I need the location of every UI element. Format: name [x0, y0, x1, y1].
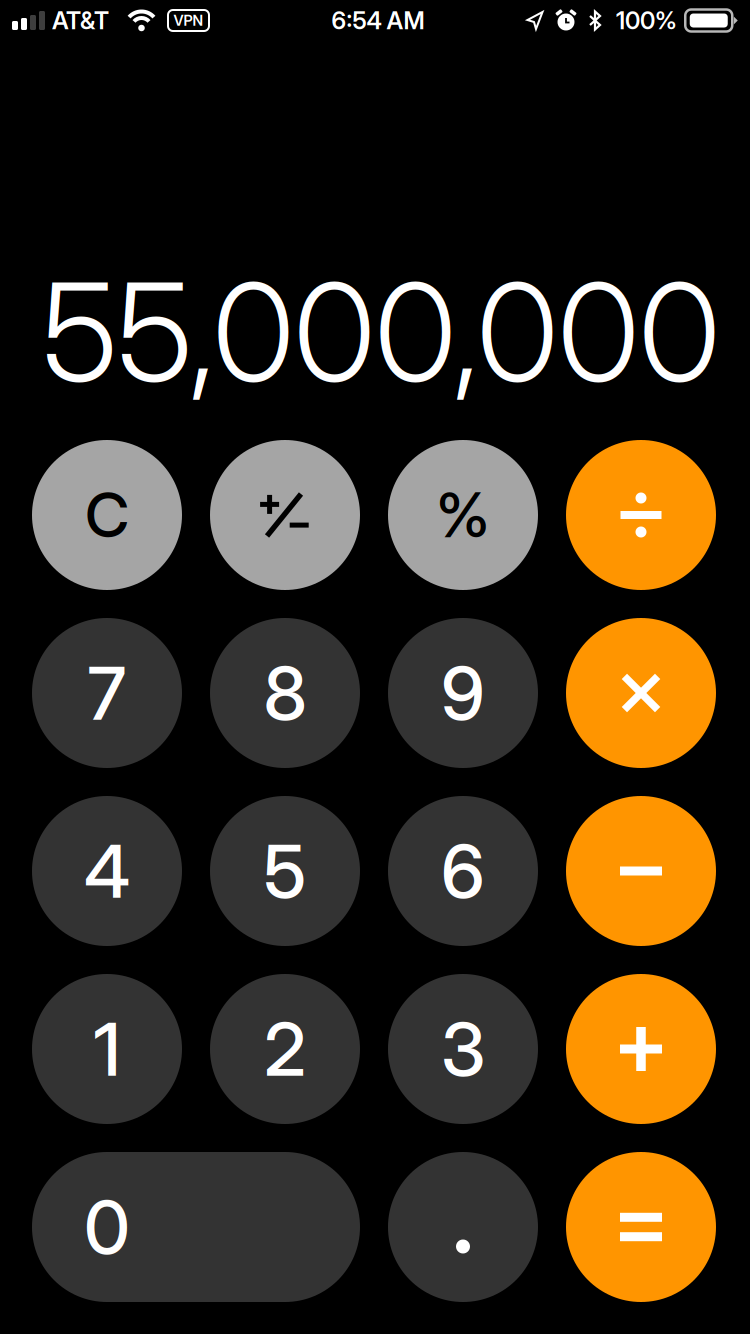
- staticText: 3: [441, 1005, 485, 1093]
- staticText: 55,000,000: [42, 250, 720, 414]
- staticText: 4: [84, 827, 130, 915]
- staticText: VPN: [173, 12, 203, 29]
- button[interactable]: [210, 618, 360, 768]
- button[interactable]: [32, 796, 182, 946]
- staticText: 6: [441, 827, 485, 915]
- staticText: AT&T: [52, 6, 109, 35]
- staticText: 0: [84, 1183, 130, 1271]
- staticText: 2: [264, 1005, 306, 1093]
- button[interactable]: [566, 1152, 716, 1302]
- button[interactable]: [566, 796, 716, 946]
- staticText: C: [85, 478, 129, 552]
- button[interactable]: [32, 1152, 360, 1302]
- staticText: 1: [93, 1005, 120, 1093]
- staticText: 100%: [616, 6, 677, 35]
- staticText: 8: [263, 649, 306, 737]
- button[interactable]: [566, 974, 716, 1124]
- button[interactable]: [566, 440, 716, 590]
- button[interactable]: [32, 618, 182, 768]
- staticText: 7: [87, 649, 126, 737]
- button[interactable]: [388, 618, 538, 768]
- button[interactable]: [210, 440, 360, 590]
- staticText: 9: [441, 649, 485, 737]
- button[interactable]: [32, 440, 182, 590]
- button[interactable]: [388, 1152, 538, 1302]
- button[interactable]: [388, 974, 538, 1124]
- staticText: %: [436, 478, 490, 552]
- button[interactable]: [566, 618, 716, 768]
- button[interactable]: [388, 440, 538, 590]
- button[interactable]: [32, 974, 182, 1124]
- button[interactable]: [388, 796, 538, 946]
- button[interactable]: [210, 974, 360, 1124]
- button[interactable]: [210, 796, 360, 946]
- staticText: 5: [263, 827, 306, 915]
- staticText: 6:54 AM: [331, 6, 424, 35]
